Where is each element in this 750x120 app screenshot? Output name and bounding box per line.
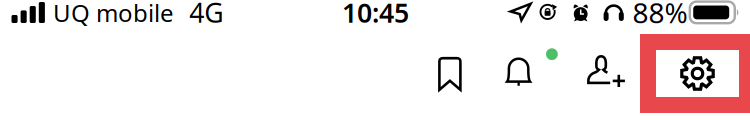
button[interactable]: Bookmarks	[419, 43, 481, 105]
button[interactable]: Notifications	[488, 40, 550, 102]
staticText: UQ mobile	[53, 0, 174, 29]
button[interactable]: Add friend	[576, 41, 638, 103]
staticText: 4G	[189, 0, 223, 30]
staticText: 88%	[632, 0, 687, 31]
staticText: 10:45	[342, 0, 409, 30]
button[interactable]: Settings	[640, 34, 750, 113]
